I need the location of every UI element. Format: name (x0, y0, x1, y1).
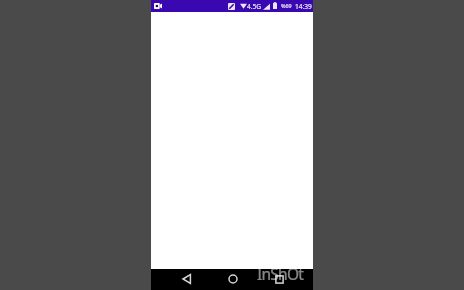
staticText: InShOt (257, 263, 304, 284)
staticText: %69 (281, 2, 292, 9)
button[interactable]: Home (218, 269, 248, 290)
other: Battery (273, 2, 277, 9)
button[interactable]: Recent apps (264, 269, 294, 290)
button[interactable]: Back (172, 269, 202, 290)
other: Mobile signal (263, 3, 270, 10)
other: Wi-Fi (240, 3, 247, 9)
other: Screen recording (154, 3, 162, 9)
other: Screenshot (228, 3, 235, 10)
staticText: 4.5G (247, 2, 262, 11)
staticText: 14:39 (295, 2, 312, 11)
